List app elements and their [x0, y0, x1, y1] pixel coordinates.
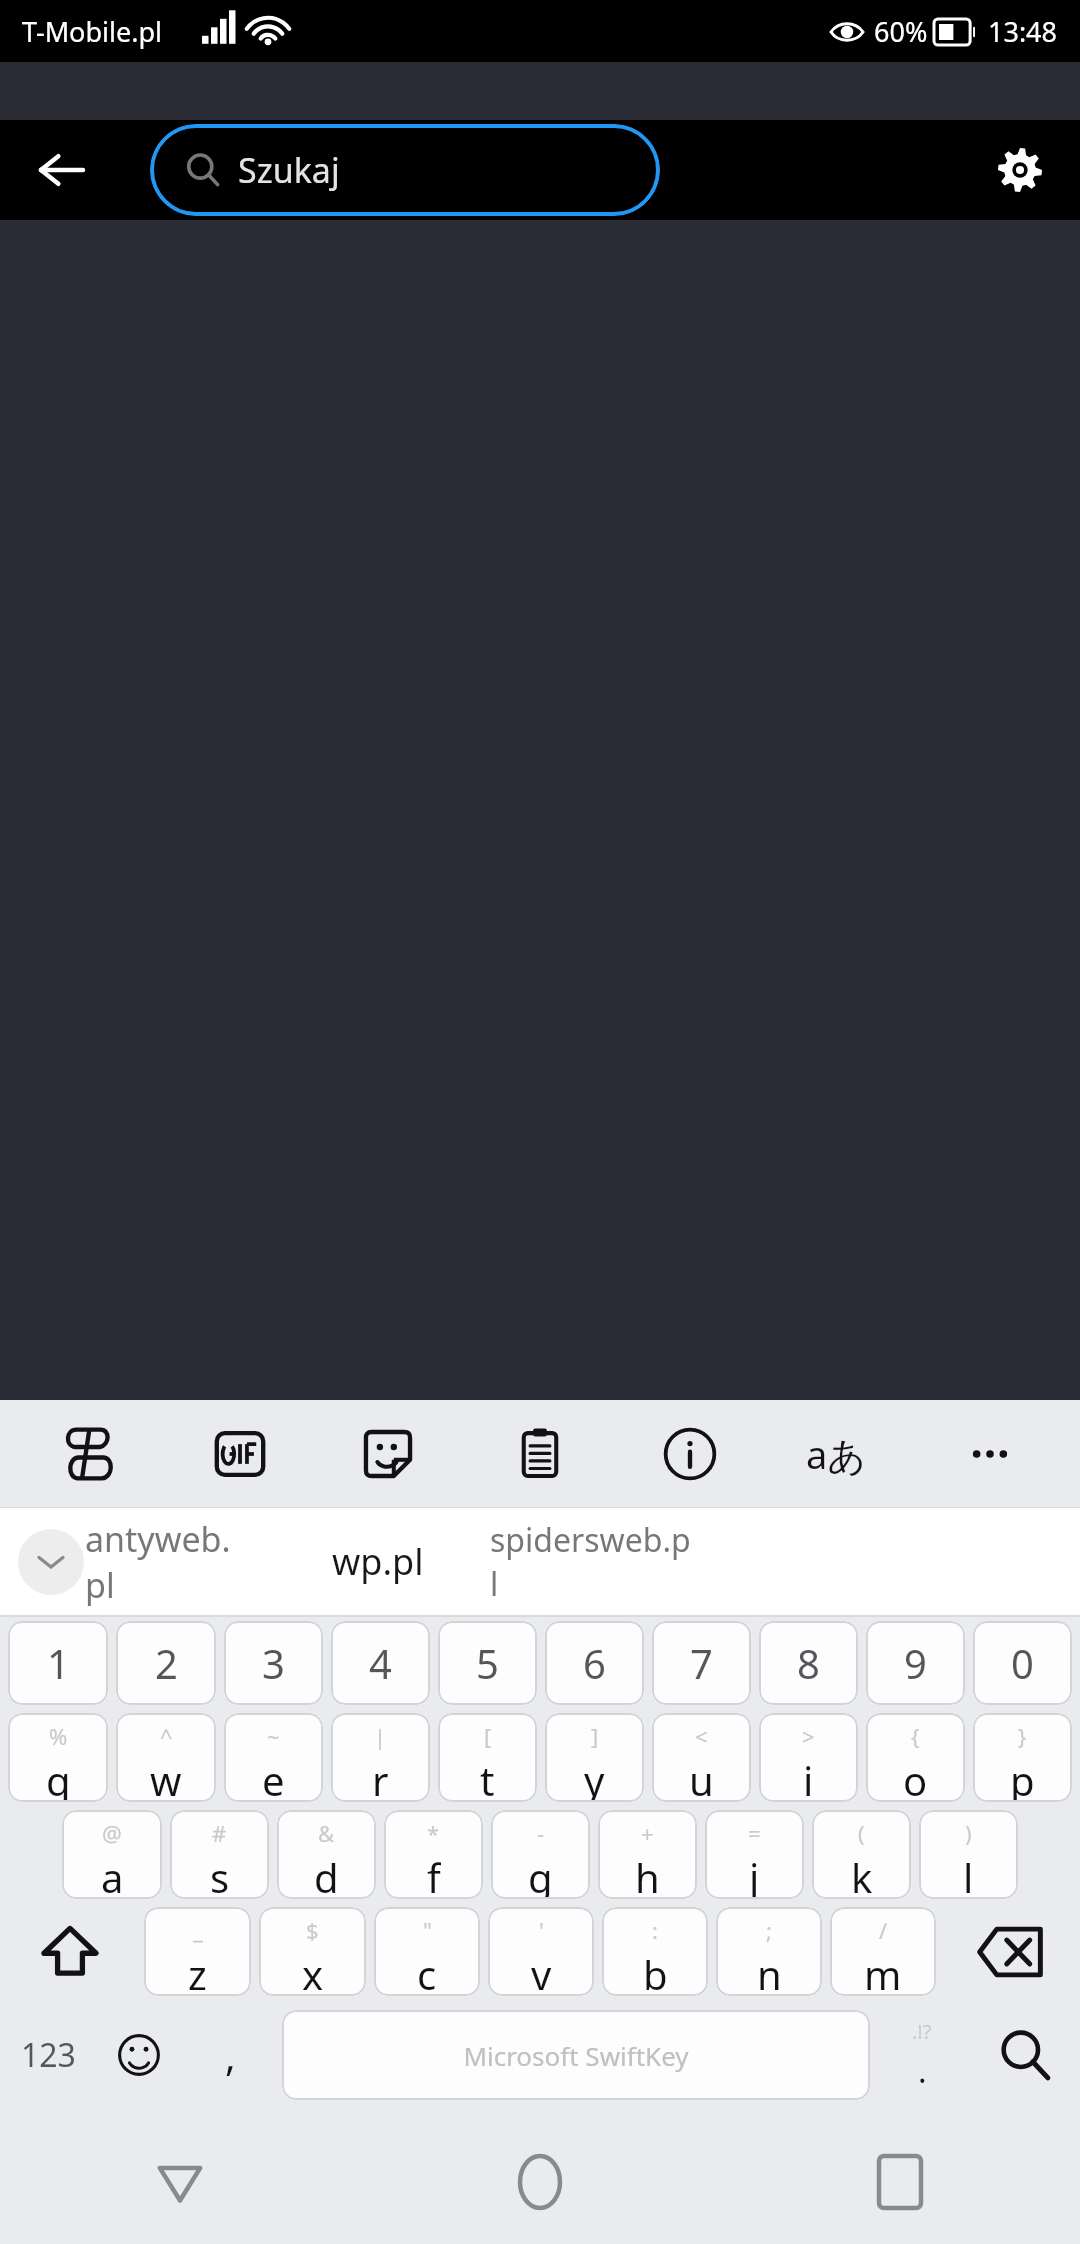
button[interactable]: & [277, 1810, 376, 1899]
button[interactable]: - [491, 1810, 590, 1899]
button[interactable]: 4 [331, 1621, 430, 1705]
button[interactable]: Microsoft SwiftKey [282, 2010, 870, 2100]
button[interactable]: Szukaj [150, 124, 660, 216]
staticText: , [225, 2028, 236, 2082]
button[interactable]: 2 [116, 1621, 216, 1705]
button[interactable]: > [759, 1713, 858, 1802]
staticText: - [537, 1818, 545, 1848]
button[interactable]: spidersweb.pl [490, 1508, 695, 1615]
staticText: $ [306, 1915, 319, 1945]
staticText: j [749, 1850, 760, 1899]
button[interactable]: Recents [720, 2120, 1080, 2244]
staticText: > [802, 1721, 815, 1751]
staticText: 60% [874, 13, 928, 50]
button[interactable]: More [938, 1400, 1042, 1507]
staticText: z [188, 1947, 207, 1996]
button[interactable]: _ [144, 1907, 251, 1996]
staticText: wp.pl [332, 1537, 424, 1586]
button[interactable]: ~ [224, 1713, 323, 1802]
button[interactable]: GIF [188, 1400, 292, 1507]
button[interactable]: Home [360, 2120, 720, 2244]
button[interactable]: ) [919, 1810, 1018, 1899]
staticText: n [757, 1947, 782, 1996]
button[interactable]: = [705, 1810, 804, 1899]
button[interactable]: 6 [545, 1621, 644, 1705]
button[interactable]: 7 [652, 1621, 751, 1705]
button[interactable]: Search [970, 2004, 1080, 2106]
button[interactable]: Settings [978, 128, 1062, 212]
button[interactable]: < [652, 1713, 751, 1802]
button[interactable]: ' [488, 1907, 594, 1996]
staticText: m [864, 1947, 902, 1996]
button[interactable]: 1 [8, 1621, 108, 1705]
button[interactable]: : [602, 1907, 708, 1996]
staticText: + [641, 1818, 654, 1848]
staticText: h [635, 1850, 660, 1899]
staticText: # [212, 1818, 227, 1848]
staticText: 5 [476, 1636, 499, 1690]
button[interactable]: 123 [0, 2004, 96, 2106]
button[interactable]: wp.pl [290, 1508, 466, 1615]
staticText: p [1010, 1753, 1035, 1802]
staticText: 9 [904, 1636, 927, 1690]
button[interactable]: SwiftKey [36, 1400, 140, 1507]
button[interactable]: Info [638, 1400, 742, 1507]
button[interactable]: 5 [438, 1621, 537, 1705]
button[interactable]: ] [545, 1713, 644, 1802]
button[interactable]: Stickers [336, 1400, 440, 1507]
button[interactable]: Emoji [96, 2004, 182, 2106]
staticText: 4 [369, 1636, 392, 1690]
staticText: 8 [797, 1636, 820, 1690]
button[interactable]: Back [0, 2120, 360, 2244]
staticText: w [150, 1753, 182, 1802]
button[interactable]: 0 [973, 1621, 1072, 1705]
button[interactable]: , [182, 2004, 278, 2106]
staticText: | [374, 1721, 387, 1751]
button[interactable]: ( [812, 1810, 911, 1899]
button[interactable]: Backspace [940, 1907, 1080, 1996]
button[interactable]: # [170, 1810, 269, 1899]
button[interactable]: Clipboard [488, 1400, 592, 1507]
button[interactable]: / [830, 1907, 936, 1996]
staticText: e [262, 1753, 285, 1802]
staticText: ~ [267, 1721, 280, 1751]
button[interactable]: .!? [874, 2004, 970, 2106]
staticText: 7 [690, 1636, 713, 1690]
button[interactable]: Back [20, 128, 104, 212]
staticText: 13:48 [988, 13, 1058, 50]
button[interactable]: Expand suggestions [18, 1529, 84, 1595]
button[interactable]: 9 [866, 1621, 965, 1705]
button[interactable]: 8 [759, 1621, 858, 1705]
staticText: = [748, 1818, 761, 1848]
button[interactable]: ; [716, 1907, 822, 1996]
staticText: b [643, 1947, 668, 1996]
staticText: k [851, 1850, 873, 1899]
button[interactable]: { [866, 1713, 965, 1802]
staticText: q [46, 1753, 71, 1802]
button[interactable]: * [384, 1810, 483, 1899]
staticText: < [695, 1721, 708, 1751]
button[interactable]: Shift [0, 1907, 140, 1996]
button[interactable]: + [598, 1810, 697, 1899]
staticText: _ [193, 1915, 203, 1945]
staticText: ] [591, 1721, 599, 1751]
button[interactable]: ^ [116, 1713, 216, 1802]
button[interactable]: Translate [784, 1400, 888, 1507]
staticText: u [689, 1753, 714, 1802]
button[interactable]: $ [259, 1907, 366, 1996]
staticText: { [911, 1721, 920, 1751]
staticText: . [918, 2049, 927, 2093]
button[interactable]: % [8, 1713, 108, 1802]
button[interactable]: [ [438, 1713, 537, 1802]
staticText: f [427, 1850, 441, 1899]
button[interactable]: | [331, 1713, 430, 1802]
staticText: aあ [806, 1428, 867, 1480]
button[interactable]: 3 [224, 1621, 323, 1705]
staticText: o [903, 1753, 928, 1802]
button[interactable]: antyweb.pl [85, 1508, 250, 1615]
button[interactable]: " [374, 1907, 480, 1996]
staticText: " [423, 1915, 432, 1945]
staticText: x [302, 1947, 324, 1996]
button[interactable]: @ [62, 1810, 162, 1899]
button[interactable]: } [973, 1713, 1072, 1802]
